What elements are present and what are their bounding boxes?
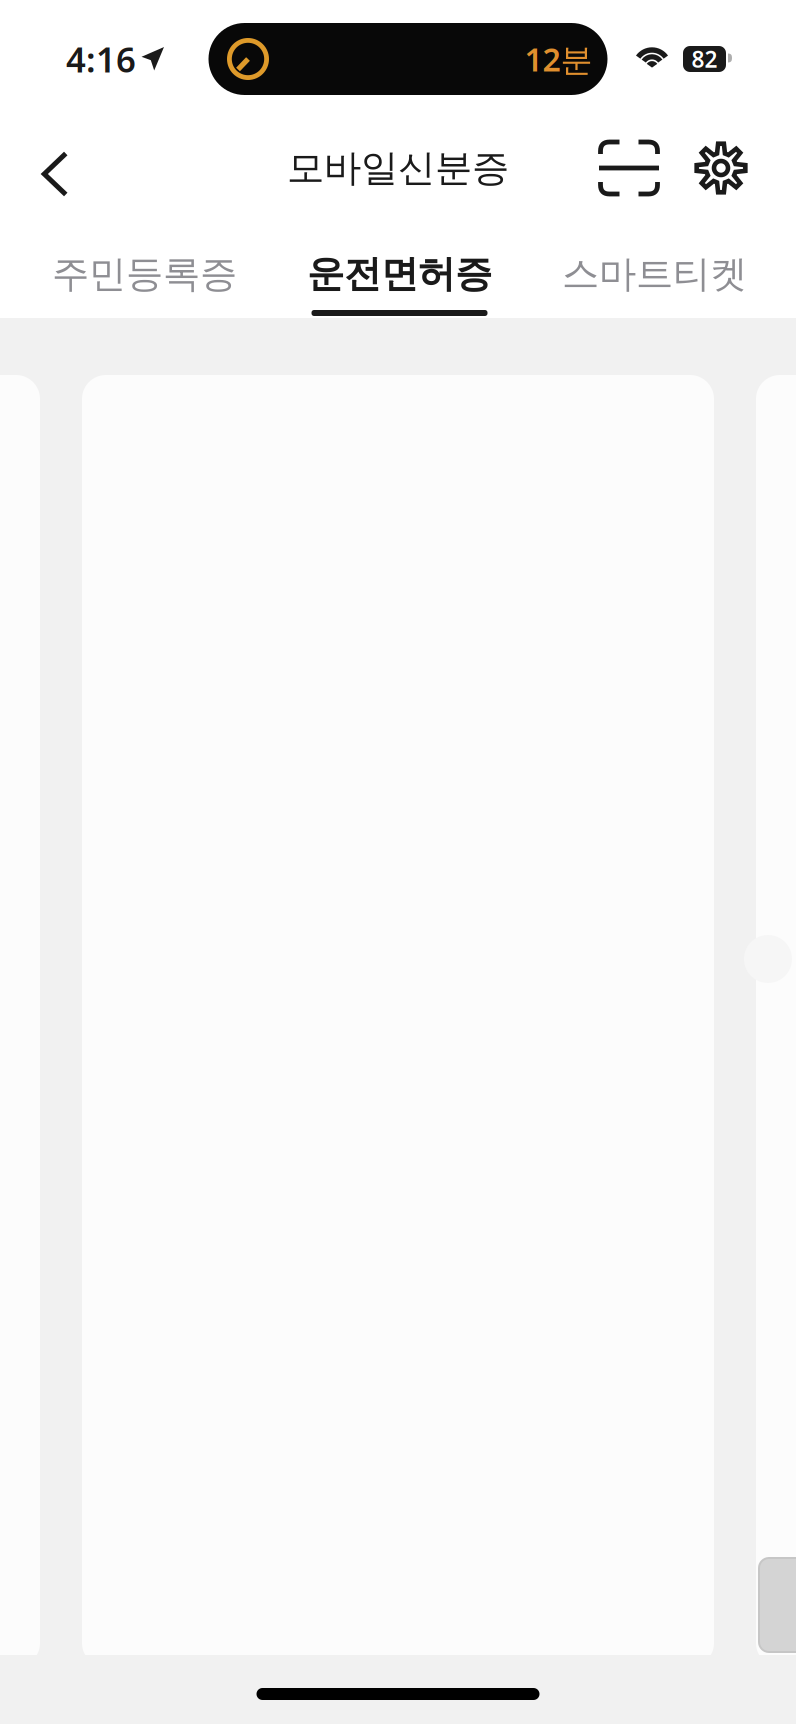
staticText: 82 [691,44,717,74]
button[interactable]: 스마트티켓 [546,218,763,318]
staticText: 주민등록증 [52,251,237,297]
staticText: 12분 [524,38,592,80]
button[interactable]: 운전면허증 [291,218,508,318]
staticText: 4:16 [66,36,136,82]
button[interactable]: Back [13,118,97,218]
staticText: 스마트티켓 [562,251,747,297]
button[interactable]: Scan [583,118,675,218]
button[interactable]: 주민등록증 [36,218,253,318]
staticText: 운전면허증 [307,251,492,297]
staticText: 모바일신분증 [287,145,509,191]
button[interactable]: Settings [675,118,767,218]
